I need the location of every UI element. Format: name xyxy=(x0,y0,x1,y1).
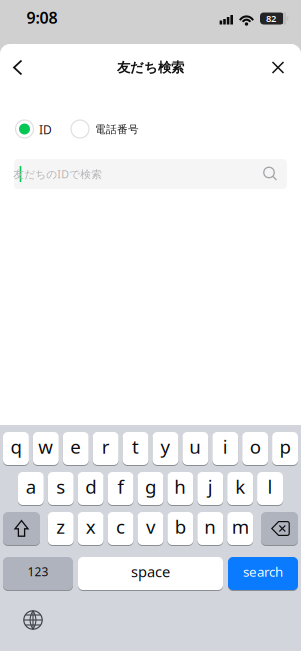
button[interactable]: ID xyxy=(12,117,60,141)
button[interactable] xyxy=(263,49,293,85)
button[interactable] xyxy=(3,512,40,545)
staticText: o xyxy=(250,434,261,459)
button[interactable]: l xyxy=(257,472,283,505)
button[interactable]: d xyxy=(78,472,104,505)
button[interactable]: y xyxy=(152,432,178,465)
staticText: t xyxy=(132,434,139,459)
staticText: k xyxy=(235,474,245,499)
button[interactable] xyxy=(4,49,34,85)
button[interactable]: z xyxy=(48,512,74,545)
button[interactable]: x xyxy=(78,512,104,545)
button[interactable]: 123 xyxy=(3,557,73,590)
staticText: d xyxy=(85,474,96,499)
button[interactable]: p xyxy=(272,432,298,465)
staticText: m xyxy=(232,514,249,539)
button[interactable]: 電話番号 xyxy=(68,117,146,141)
staticText: j xyxy=(208,474,213,499)
staticText: u xyxy=(189,434,201,459)
button[interactable]: a xyxy=(18,472,44,505)
staticText: space xyxy=(131,562,170,581)
button[interactable]: m xyxy=(227,512,253,545)
staticText: s xyxy=(56,474,65,499)
button[interactable]: f xyxy=(108,472,133,505)
button[interactable]: r xyxy=(93,432,119,465)
staticText: e xyxy=(70,434,81,459)
staticText: w xyxy=(38,434,53,459)
button[interactable]: e xyxy=(63,432,89,465)
staticText: q xyxy=(10,434,21,459)
button[interactable]: j xyxy=(197,472,223,505)
staticText: z xyxy=(56,514,65,539)
button[interactable]: n xyxy=(197,512,223,545)
button[interactable]: g xyxy=(137,472,163,505)
staticText: 友だち検索 xyxy=(117,59,184,76)
staticText: 9:08 xyxy=(26,7,57,28)
button[interactable] xyxy=(261,512,298,545)
button[interactable]: s xyxy=(48,472,74,505)
staticText: 123 xyxy=(27,563,48,579)
button[interactable]: i xyxy=(212,432,238,465)
staticText: search xyxy=(243,563,283,580)
button[interactable]: search xyxy=(228,557,298,590)
staticText: 友だちのIDで検索 xyxy=(13,167,102,181)
staticText: f xyxy=(117,474,123,499)
staticText: v xyxy=(146,514,155,539)
button[interactable]: space xyxy=(78,557,223,590)
staticText: c xyxy=(116,514,125,539)
staticText: x xyxy=(86,514,96,539)
button[interactable]: w xyxy=(33,432,59,465)
button[interactable]: o xyxy=(242,432,268,465)
button[interactable]: q xyxy=(3,432,29,465)
staticText: 電話番号 xyxy=(95,123,139,136)
button[interactable]: b xyxy=(167,512,193,545)
staticText: b xyxy=(175,514,186,539)
staticText: p xyxy=(279,434,290,459)
button[interactable]: 友だちのIDで検索 xyxy=(14,159,287,189)
button[interactable]: t xyxy=(123,432,148,465)
button[interactable]: c xyxy=(108,512,133,545)
staticText: 82 xyxy=(266,12,276,25)
staticText: r xyxy=(102,434,110,459)
button[interactable]: u xyxy=(182,432,208,465)
staticText: l xyxy=(267,474,272,499)
staticText: h xyxy=(174,474,186,499)
staticText: a xyxy=(26,474,36,499)
button[interactable]: h xyxy=(167,472,193,505)
staticText: n xyxy=(204,514,216,539)
staticText: i xyxy=(223,434,228,459)
button[interactable]: v xyxy=(137,512,163,545)
staticText: g xyxy=(145,474,156,499)
staticText: ID xyxy=(39,121,52,137)
staticText: y xyxy=(160,434,170,459)
button[interactable]: k xyxy=(227,472,253,505)
button[interactable] xyxy=(22,609,44,631)
